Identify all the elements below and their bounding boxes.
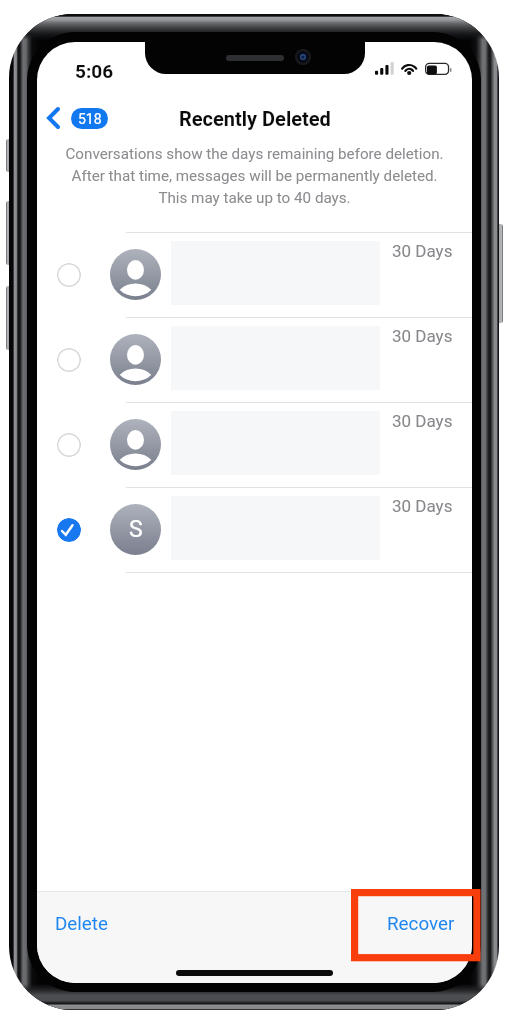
- staticText: S: [129, 516, 143, 543]
- button[interactable]: Not selected: [57, 433, 81, 457]
- staticText: Delete: [55, 913, 108, 935]
- staticText: 518: [78, 111, 102, 127]
- staticText: Conversations show the days remaining be…: [37, 145, 472, 207]
- button[interactable]: Recover: [369, 903, 472, 945]
- button[interactable]: Not selected: [37, 317, 472, 402]
- button[interactable]: Not selected: [57, 263, 81, 287]
- staticText: 30 Days: [392, 496, 453, 516]
- staticText: 30 Days: [392, 241, 453, 261]
- button[interactable]: Selected: [57, 518, 81, 542]
- button[interactable]: Selected: [37, 487, 472, 572]
- button[interactable]: Not selected: [37, 402, 472, 487]
- button[interactable]: Delete: [37, 903, 126, 945]
- staticText: 30 Days: [392, 411, 453, 431]
- button[interactable]: Not selected: [37, 232, 472, 317]
- button[interactable]: Not selected: [57, 348, 81, 372]
- staticText: 30 Days: [392, 326, 453, 346]
- staticText: Recover: [387, 913, 455, 935]
- staticText: Recently Deleted: [179, 107, 331, 130]
- staticText: 5:06: [75, 60, 114, 82]
- button[interactable]: Back to 518 conversations: [41, 101, 116, 135]
